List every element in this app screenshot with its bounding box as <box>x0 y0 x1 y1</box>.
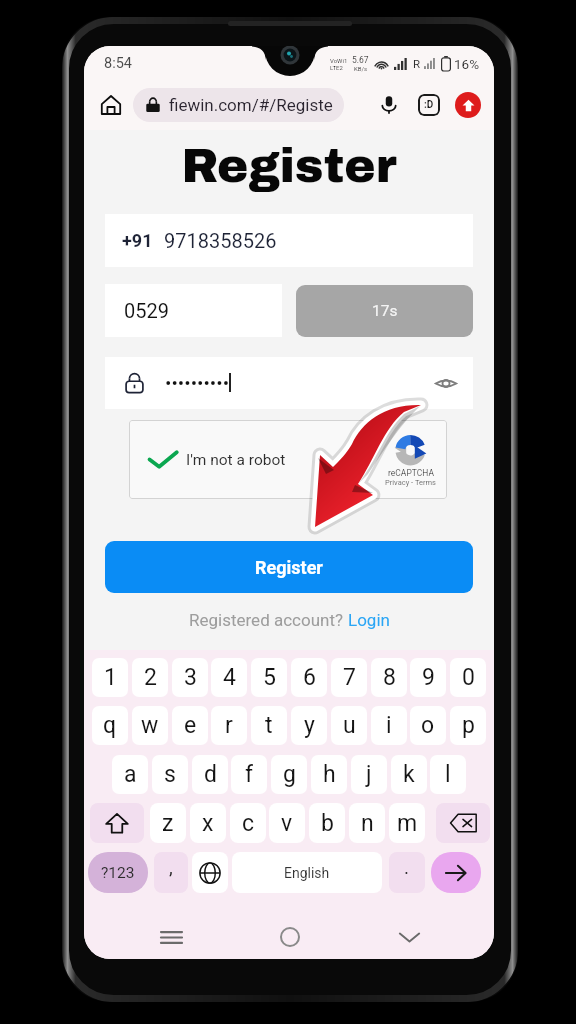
button[interactable]: , <box>154 852 188 893</box>
button[interactable]: e <box>172 706 208 745</box>
staticText: 2 <box>144 664 157 691</box>
staticText: fiewin.com/#/Registe <box>169 95 333 115</box>
staticText: Registered account? <box>189 610 348 630</box>
staticText: j <box>366 761 372 788</box>
button[interactable]: q <box>92 706 128 745</box>
button[interactable]: 0 <box>450 658 486 697</box>
button[interactable]: b <box>309 803 345 843</box>
button[interactable]: v <box>269 803 305 843</box>
staticText: q <box>103 712 117 739</box>
button[interactable]: s <box>152 755 188 794</box>
button[interactable]: Voice search <box>372 88 406 122</box>
staticText: ?123 <box>101 864 135 882</box>
staticText: Register <box>255 557 323 578</box>
button[interactable]: c <box>230 803 266 843</box>
button[interactable]: Shift <box>90 803 144 843</box>
button[interactable]: 2 <box>132 658 168 697</box>
button[interactable]: +91 <box>105 214 473 267</box>
button[interactable]: 8 <box>371 658 407 697</box>
staticText: 7 <box>343 664 356 691</box>
button[interactable]: Change language <box>192 852 228 893</box>
staticText: l <box>445 761 451 788</box>
staticText: f <box>245 761 253 788</box>
button[interactable]: 4 <box>211 658 247 697</box>
staticText: 5 <box>263 664 276 691</box>
staticText: a <box>124 761 137 788</box>
button[interactable]: g <box>271 755 307 794</box>
staticText: KB/s <box>354 65 368 72</box>
staticText: I'm not a robot <box>186 451 286 469</box>
button[interactable]: ?123 <box>88 852 148 893</box>
button[interactable]: n <box>349 803 385 843</box>
staticText: English <box>284 865 330 881</box>
staticText: 5.67 <box>352 55 369 65</box>
button[interactable]: Enter <box>431 852 481 893</box>
button[interactable]: f <box>231 755 267 794</box>
button[interactable]: 6 <box>291 658 327 697</box>
button[interactable]: k <box>391 755 427 794</box>
staticText: s <box>164 761 176 788</box>
button[interactable]: d <box>192 755 228 794</box>
staticText: k <box>403 761 415 788</box>
button[interactable]: 9 <box>410 658 446 697</box>
button[interactable]: w <box>132 706 168 745</box>
button[interactable]: p <box>450 706 486 745</box>
button[interactable]: m <box>389 803 425 843</box>
button[interactable]: u <box>331 706 367 745</box>
button[interactable]: x <box>190 803 226 843</box>
button[interactable]: Home <box>93 87 129 123</box>
button[interactable]: t <box>251 706 287 745</box>
button[interactable]: z <box>150 803 186 843</box>
button[interactable]: Tabs <box>412 88 446 122</box>
button[interactable]: 5 <box>251 658 287 697</box>
button[interactable]: Backspace <box>436 803 490 843</box>
staticText: 17s <box>372 302 398 320</box>
button[interactable]: Register <box>105 541 473 593</box>
button[interactable]: r <box>211 706 247 745</box>
staticText: u <box>343 712 356 739</box>
button[interactable]: h <box>311 755 347 794</box>
staticText: reCAPTCHA <box>388 468 434 478</box>
button[interactable]: 17s <box>296 285 473 337</box>
staticText: . <box>404 856 410 878</box>
button[interactable]: Update <box>451 88 485 122</box>
staticText: r <box>225 712 233 739</box>
button[interactable]: a <box>112 755 148 794</box>
staticText: 4 <box>223 664 236 691</box>
staticText: d <box>204 761 217 788</box>
button[interactable]: 0529 <box>105 284 282 337</box>
button[interactable]: i <box>371 706 407 745</box>
staticText: i <box>386 712 392 739</box>
button[interactable]: •••••••••• <box>105 357 473 409</box>
button[interactable]: English <box>232 852 382 893</box>
button[interactable]: Recents <box>150 916 192 958</box>
button[interactable]: Back <box>388 916 430 958</box>
staticText: 0529 <box>124 299 169 322</box>
button[interactable]: . <box>389 852 425 893</box>
button[interactable]: Registered account? <box>84 610 494 630</box>
button[interactable]: o <box>410 706 446 745</box>
staticText: LTE2 <box>330 64 343 71</box>
staticText: m <box>397 810 418 837</box>
button[interactable]: l <box>430 755 466 794</box>
button[interactable]: Home <box>269 916 311 958</box>
button[interactable]: 1 <box>92 658 128 697</box>
button[interactable]: y <box>291 706 327 745</box>
button[interactable]: 3 <box>172 658 208 697</box>
staticText: Login <box>348 610 390 630</box>
button[interactable]: fiewin.com/#/Registe <box>133 88 344 122</box>
button[interactable]: 7 <box>331 658 367 697</box>
staticText: R <box>413 57 421 70</box>
staticText: b <box>321 810 334 837</box>
staticText: y <box>304 712 315 739</box>
button[interactable]: I'm not a robot <box>129 420 447 499</box>
staticText: 6 <box>303 664 316 691</box>
staticText: w <box>141 712 159 739</box>
staticText: g <box>283 761 296 788</box>
staticText: v <box>281 810 293 837</box>
staticText: Register <box>181 132 397 194</box>
staticText: Privacy - Terms <box>385 478 436 487</box>
staticText: 0 <box>462 664 475 691</box>
button[interactable]: j <box>351 755 387 794</box>
staticText: VoWi1 <box>330 57 348 64</box>
